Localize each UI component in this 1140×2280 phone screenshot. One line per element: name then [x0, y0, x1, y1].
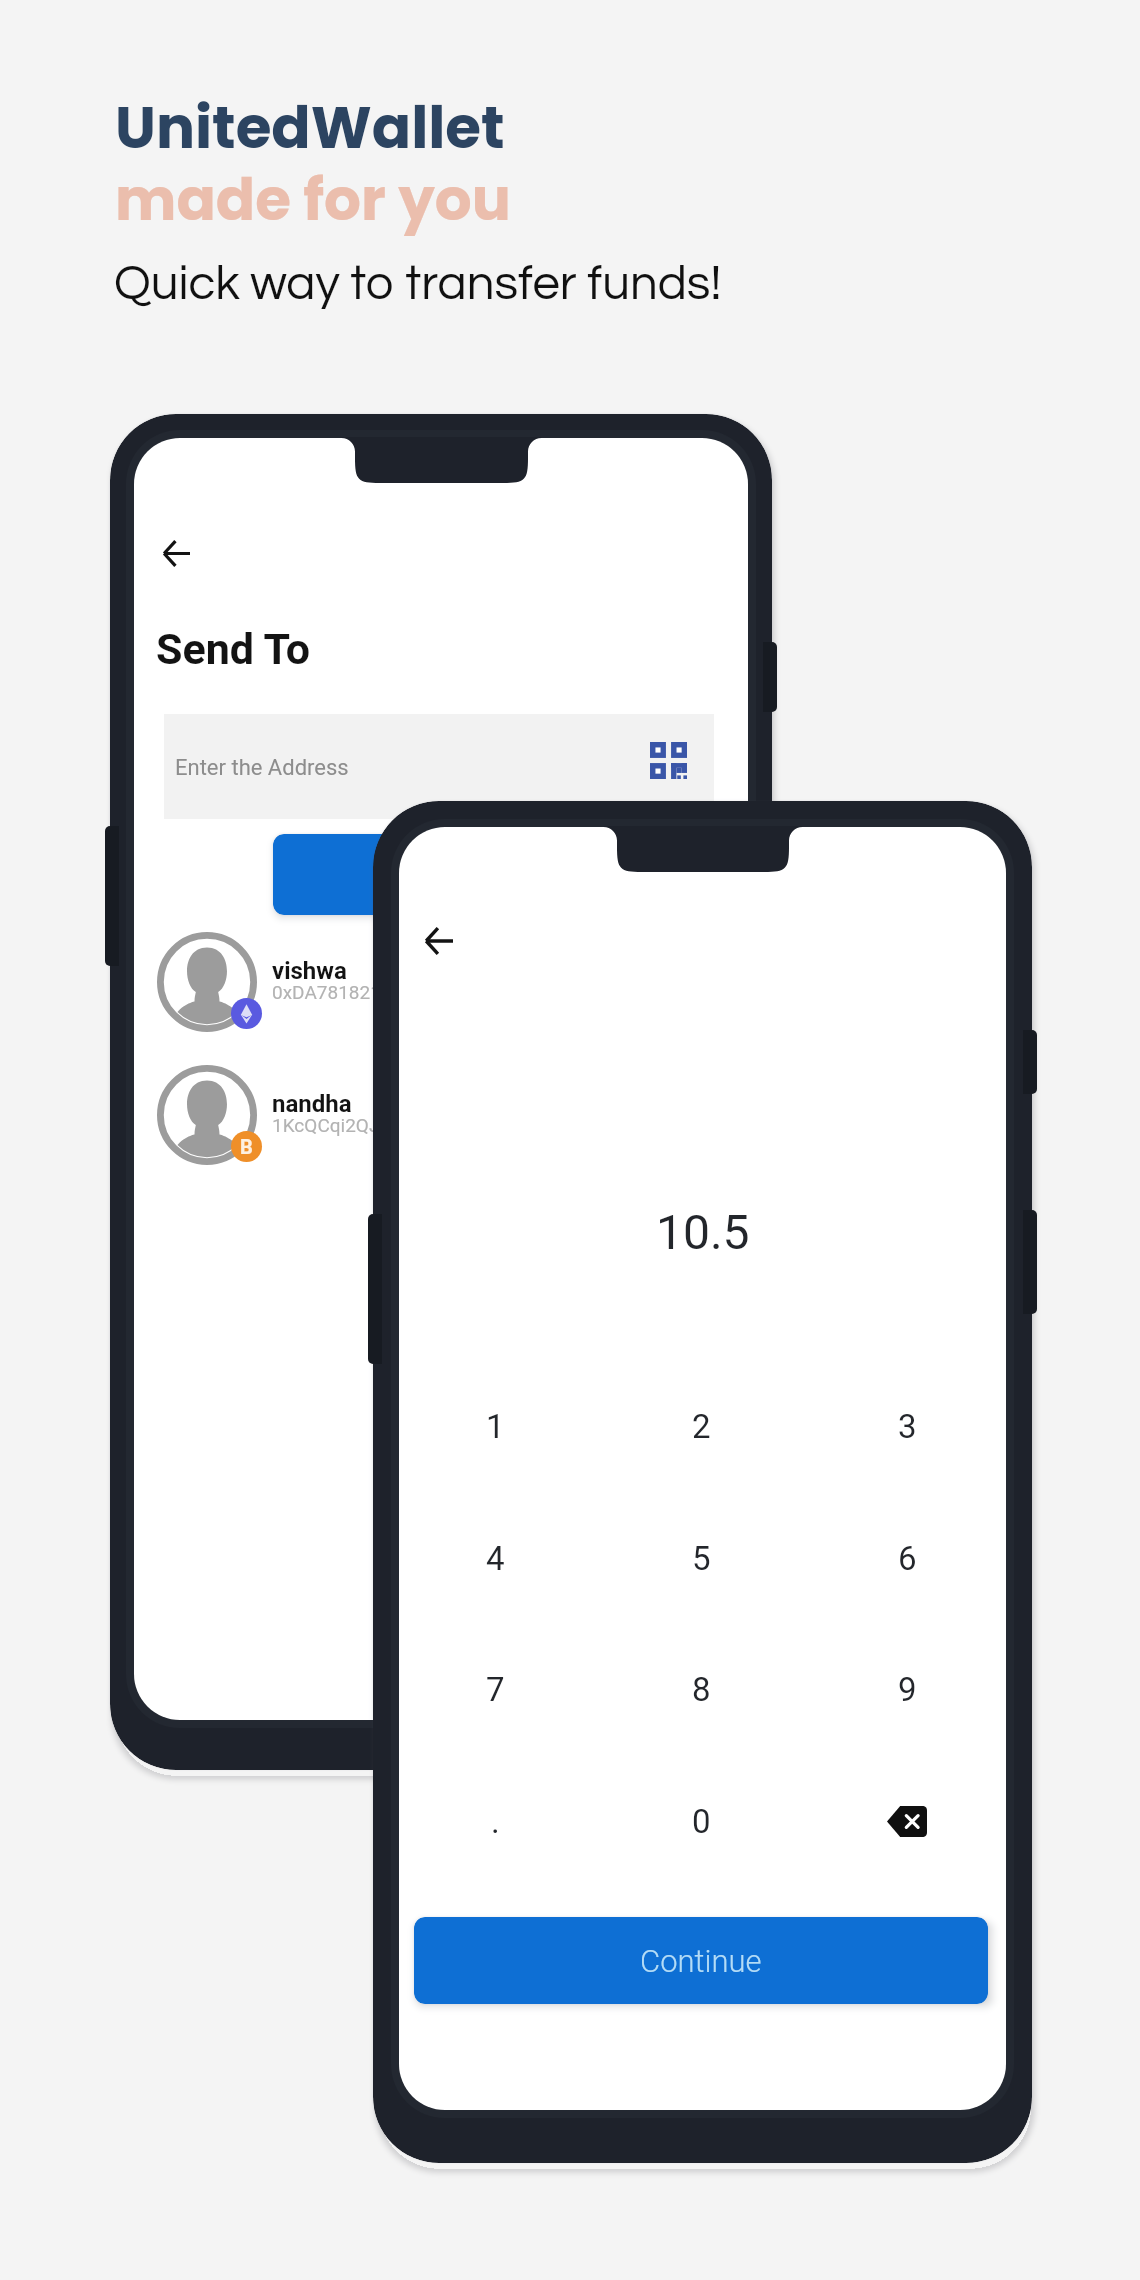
button[interactable]: Backspace	[845, 1765, 969, 1877]
staticText: B	[240, 1135, 253, 1158]
staticText: vishwa	[272, 957, 347, 985]
staticText: Send To	[156, 624, 311, 674]
button[interactable]: 8	[639, 1633, 763, 1745]
staticText: 0xDA7818213	[272, 981, 392, 1003]
staticText: 1KcQCqi2QJc	[272, 1114, 390, 1136]
button[interactable]: Back	[411, 913, 467, 969]
staticText: UnitedWallet	[115, 87, 505, 168]
other: Backspace	[887, 1806, 927, 1837]
button[interactable]: 3	[845, 1370, 969, 1482]
button[interactable]	[273, 834, 573, 915]
staticText: 2	[692, 1407, 711, 1446]
staticText: 5	[692, 1539, 711, 1578]
staticText: 1	[486, 1407, 505, 1446]
button[interactable]: Back	[148, 525, 204, 581]
button[interactable]: 2	[639, 1370, 763, 1482]
button[interactable]: B	[134, 1051, 574, 1177]
button[interactable]: 1	[433, 1370, 557, 1482]
staticText: 10.5	[656, 1204, 750, 1260]
button[interactable]: 7	[433, 1633, 557, 1745]
staticText: 6	[898, 1539, 917, 1578]
button[interactable]: 6	[845, 1502, 969, 1614]
staticText: 7	[486, 1670, 505, 1709]
button[interactable]: 5	[639, 1502, 763, 1614]
staticText: 9	[898, 1670, 917, 1709]
staticText: Continue	[640, 1943, 762, 1979]
staticText: 3	[898, 1407, 917, 1446]
button[interactable]: Enter the Address	[164, 714, 714, 819]
staticText: 8	[692, 1670, 711, 1709]
staticText: 4	[486, 1539, 505, 1578]
staticText: Enter the Address	[175, 755, 349, 781]
button[interactable]: 0	[639, 1765, 763, 1877]
button[interactable]: .	[433, 1765, 557, 1877]
staticText: 0	[692, 1802, 711, 1841]
staticText: made for you	[115, 159, 511, 240]
button[interactable]: 4	[433, 1502, 557, 1614]
button[interactable]: Continue	[414, 1917, 988, 2004]
button[interactable]: vishwa	[134, 918, 574, 1044]
staticText: .	[491, 1802, 500, 1841]
staticText: nandha	[272, 1090, 352, 1118]
button[interactable]: 9	[845, 1633, 969, 1745]
staticText: Quick way to transfer funds!	[114, 259, 722, 309]
